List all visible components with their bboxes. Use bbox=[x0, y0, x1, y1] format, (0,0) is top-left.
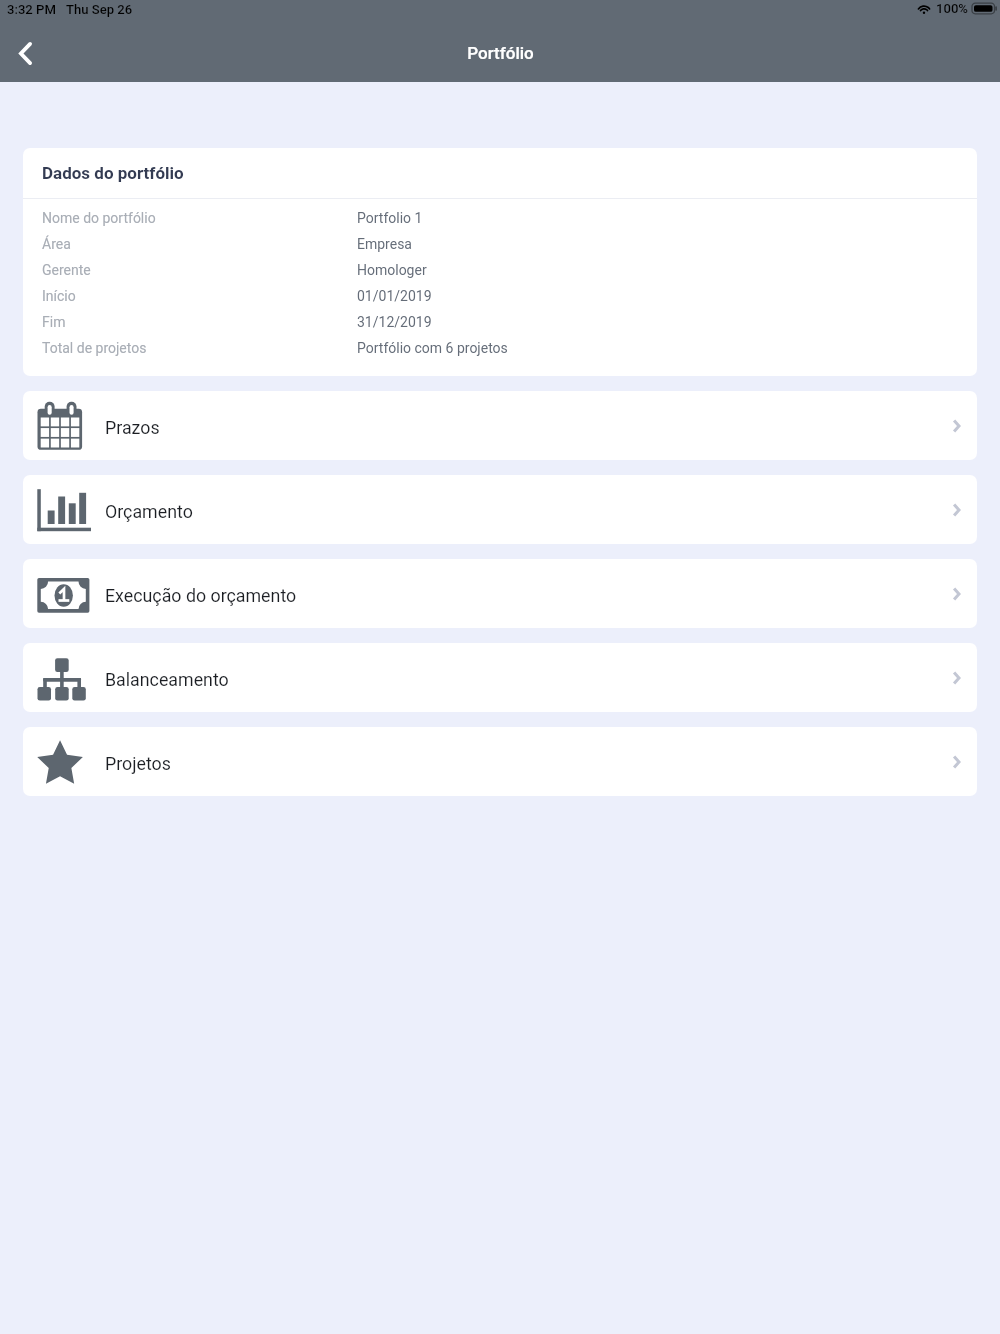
button[interactable]: Balanceamento bbox=[23, 643, 977, 712]
staticText: Portfólio com 6 projetos bbox=[357, 340, 508, 356]
staticText: 3:32 PM bbox=[7, 2, 56, 17]
staticText: Empresa bbox=[357, 236, 412, 252]
staticText: Dados do portfólio bbox=[42, 163, 184, 183]
staticText: Orçamento bbox=[105, 501, 193, 522]
staticText: Início bbox=[42, 288, 76, 304]
staticText: Total de projetos bbox=[42, 340, 147, 356]
staticText: Thu Sep 26 bbox=[66, 2, 133, 17]
button[interactable]: Orçamento bbox=[23, 475, 977, 544]
staticText: 100% bbox=[936, 1, 968, 16]
staticText: Área bbox=[42, 236, 71, 252]
staticText: 01/01/2019 bbox=[357, 288, 432, 304]
button[interactable]: Prazos bbox=[23, 391, 977, 460]
staticText: Portfolio 1 bbox=[357, 210, 423, 226]
staticText: Projetos bbox=[105, 753, 171, 774]
staticText: Prazos bbox=[105, 417, 160, 438]
staticText: Fim bbox=[42, 314, 66, 330]
staticText: Portfólio bbox=[467, 43, 534, 63]
staticText: 31/12/2019 bbox=[357, 314, 432, 330]
staticText: Gerente bbox=[42, 262, 91, 278]
staticText: Homologer bbox=[357, 262, 427, 278]
button[interactable]: Execução do orçamento bbox=[23, 559, 977, 628]
staticText: Execução do orçamento bbox=[105, 585, 297, 606]
staticText: Nome do portfólio bbox=[42, 210, 156, 226]
button[interactable]: Projetos bbox=[23, 727, 977, 796]
staticText: Balanceamento bbox=[105, 669, 229, 690]
button[interactable]: Back bbox=[1, 29, 49, 77]
